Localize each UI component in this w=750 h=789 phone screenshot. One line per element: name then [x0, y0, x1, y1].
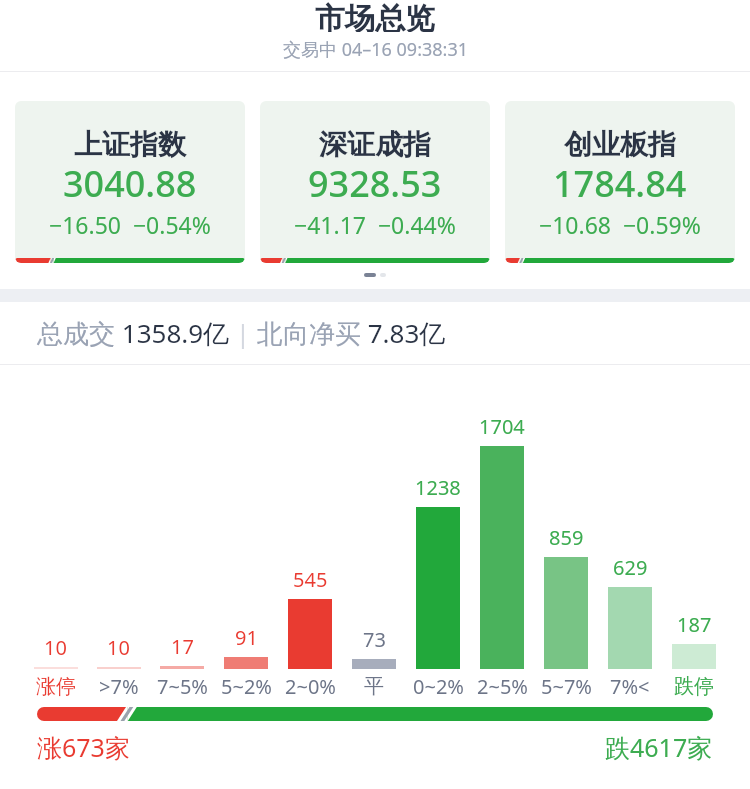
staticText: 上证指数	[74, 127, 186, 162]
staticText: 859	[549, 524, 584, 546]
staticText: 91	[235, 624, 258, 646]
staticText: −10.68 −0.59%	[539, 209, 701, 240]
staticText: 2~0%	[285, 673, 336, 700]
staticText: 545	[293, 566, 328, 588]
staticText: 1784.84	[553, 159, 687, 208]
staticText: 73	[363, 626, 386, 648]
staticText: 2~5%	[477, 673, 528, 700]
staticText: 总成交 1358.9亿 | 北向净买 7.83亿	[37, 315, 446, 351]
staticText: 1238	[415, 474, 461, 496]
button[interactable]: 创业板指	[505, 101, 735, 263]
staticText: 10	[107, 634, 130, 656]
staticText: 平	[364, 674, 384, 699]
staticText: 0~2%	[413, 673, 464, 700]
staticText: −16.50 −0.54%	[49, 209, 211, 240]
staticText: 7~5%	[157, 673, 208, 700]
staticText: 涨停	[36, 674, 76, 699]
staticText: 深证成指	[319, 127, 431, 162]
staticText: 3040.88	[63, 159, 197, 208]
staticText: 跌4617家	[605, 730, 713, 764]
staticText: 交易中 04–16 09:38:31	[283, 37, 468, 62]
staticText: −41.17 −0.44%	[294, 209, 456, 240]
staticText: 17	[171, 633, 194, 655]
staticText: 1704	[479, 413, 525, 435]
staticText: 187	[677, 611, 712, 633]
staticText: 跌停	[674, 674, 714, 699]
staticText: 5~7%	[541, 673, 592, 700]
staticText: 创业板指	[564, 127, 676, 162]
staticText: 10	[44, 634, 67, 656]
button[interactable]: 上证指数	[15, 101, 245, 263]
staticText: 7%<	[610, 673, 650, 700]
staticText: 涨673家	[37, 730, 130, 764]
staticText: 9328.53	[308, 159, 442, 208]
staticText: 629	[613, 554, 648, 576]
button[interactable]: 深证成指	[260, 101, 490, 263]
staticText: 5~2%	[221, 673, 272, 700]
staticText: >7%	[99, 673, 139, 700]
staticText: 市场总览	[315, 0, 435, 32]
